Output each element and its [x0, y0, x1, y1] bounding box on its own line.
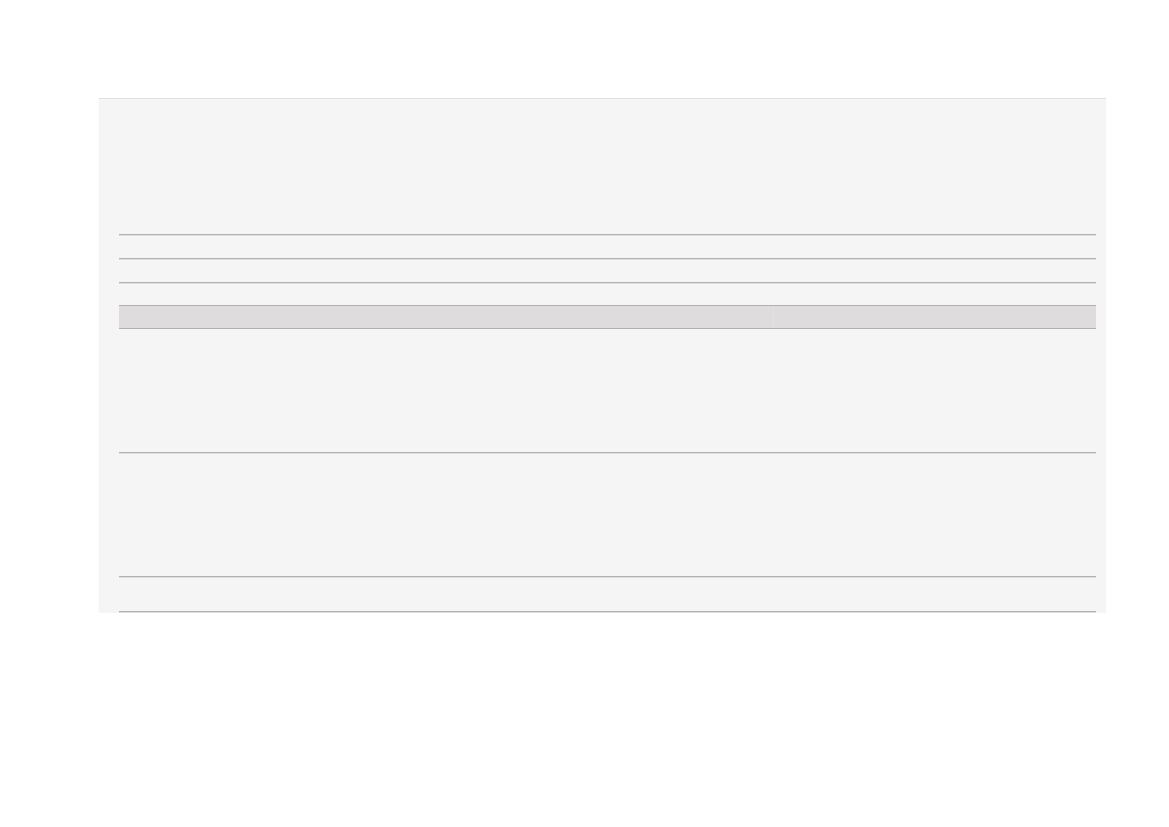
button[interactable]: List item 5: [119, 452, 1096, 576]
button[interactable]: End of list: [119, 611, 1096, 613]
button[interactable]: List item 6: [119, 576, 1096, 611]
button[interactable]: Selected item: [119, 305, 1096, 328]
button[interactable]: List item 2: [119, 258, 1096, 282]
button[interactable]: List item 3: [119, 282, 1096, 305]
button[interactable]: List item 1: [119, 234, 1096, 258]
button[interactable]: List item 4: [119, 328, 1096, 452]
